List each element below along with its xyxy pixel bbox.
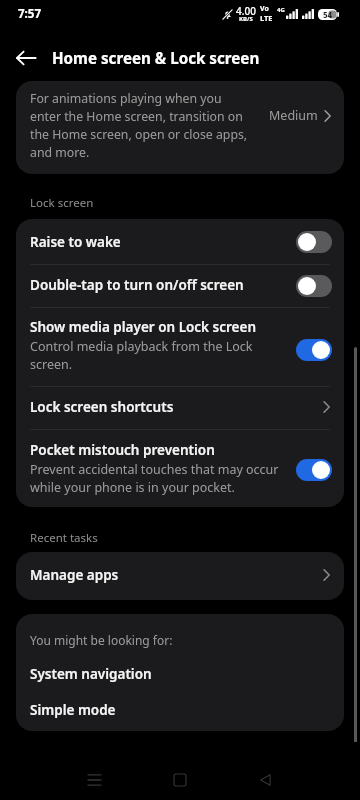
button[interactable]: Recent apps xyxy=(66,759,122,797)
button[interactable]: Manage apps xyxy=(16,552,344,600)
staticText: Home screen & Lock screen xyxy=(52,48,260,69)
button[interactable]: For animations playing when you enter th… xyxy=(16,81,344,174)
staticText: Show media player on Lock screen xyxy=(30,318,256,336)
button[interactable]: Off xyxy=(296,231,332,253)
staticText: Manage apps xyxy=(30,566,323,584)
staticText: Vo xyxy=(260,4,269,14)
staticText: Raise to wake xyxy=(30,233,121,251)
button[interactable]: Show media player on Lock screen xyxy=(16,308,344,386)
staticText: 54 xyxy=(323,9,333,20)
button[interactable]: System navigation xyxy=(30,665,330,683)
staticText: Lock screen shortcuts xyxy=(30,398,323,416)
staticText: 4.00 xyxy=(236,4,256,18)
staticText: You might be looking for: xyxy=(30,632,173,648)
staticText: LTE xyxy=(260,13,273,23)
staticText: Prevent accidental touches that may occu… xyxy=(30,461,286,496)
staticText: Medium xyxy=(269,107,318,124)
button[interactable]: Double-tap to turn on/off screen xyxy=(16,265,344,307)
button[interactable]: On xyxy=(296,459,332,481)
button[interactable]: On xyxy=(296,339,332,361)
staticText: Double-tap to turn on/off screen xyxy=(30,276,244,294)
staticText: Lock screen xyxy=(30,195,94,211)
staticText: Recent tasks xyxy=(30,530,98,546)
staticText: Pocket mistouch prevention xyxy=(30,441,215,459)
staticText: KB/S xyxy=(239,15,253,23)
button[interactable]: Back xyxy=(9,41,42,74)
staticText: For animations playing when you enter th… xyxy=(30,90,248,161)
button[interactable]: Simple mode xyxy=(30,701,330,719)
button[interactable]: Off xyxy=(296,275,332,297)
staticText: 4G xyxy=(277,6,285,14)
button[interactable]: Home xyxy=(152,759,208,797)
button[interactable]: Pocket mistouch prevention xyxy=(16,430,344,507)
staticText: Control media playback from the Lock scr… xyxy=(30,338,286,373)
button[interactable]: Back xyxy=(237,759,293,797)
staticText: 7:57 xyxy=(18,6,41,22)
button[interactable]: Lock screen shortcuts xyxy=(16,387,344,429)
button[interactable]: Raise to wake xyxy=(16,219,344,264)
